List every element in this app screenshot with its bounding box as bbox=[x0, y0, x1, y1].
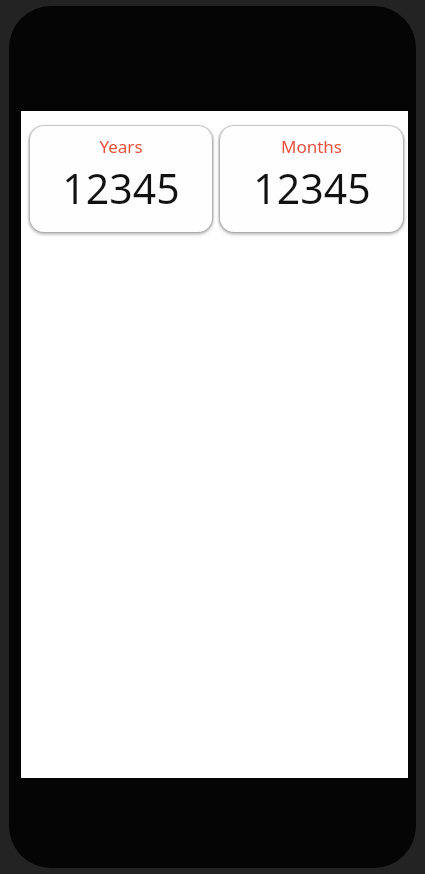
staticText: Years bbox=[99, 135, 143, 158]
staticText: 12345 bbox=[62, 160, 180, 216]
staticText: 12345 bbox=[253, 160, 371, 216]
button[interactable]: Months bbox=[220, 126, 403, 232]
button[interactable]: Years bbox=[30, 126, 212, 232]
staticText: Months bbox=[281, 135, 342, 158]
